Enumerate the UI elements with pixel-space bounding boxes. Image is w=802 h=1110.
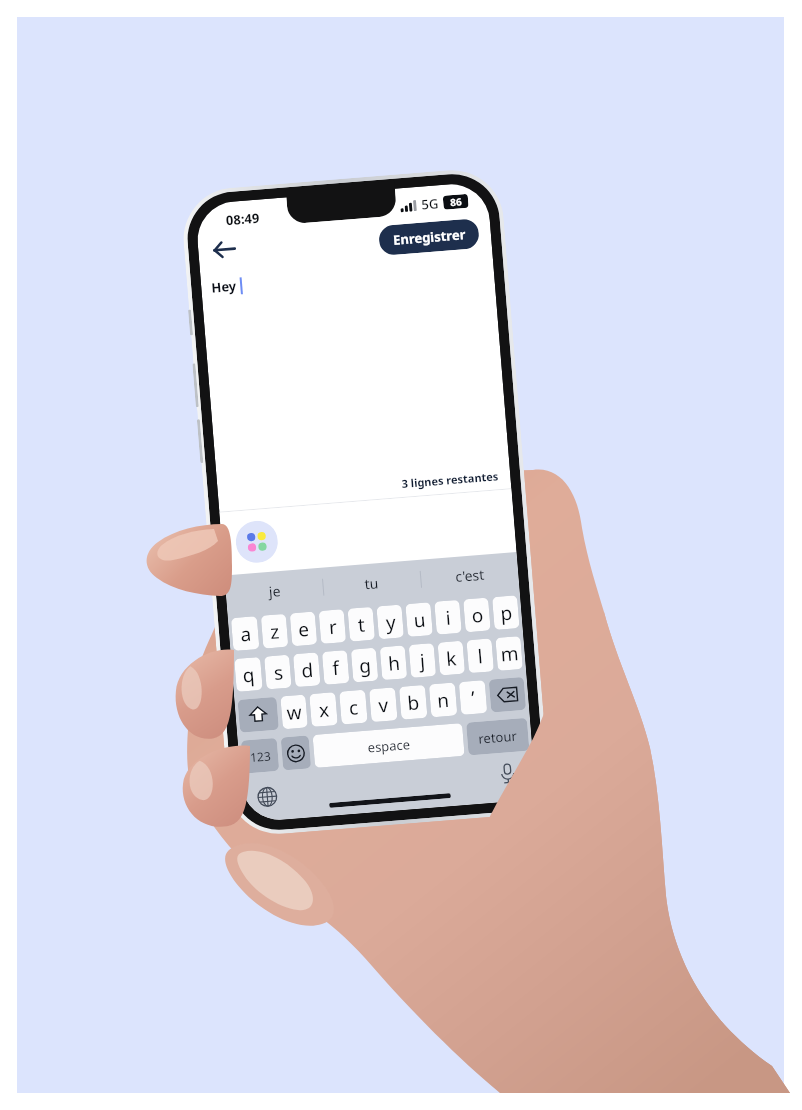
button[interactable]: Enregistrer xyxy=(378,218,480,256)
staticText: c'est xyxy=(454,565,485,586)
staticText: i xyxy=(444,605,452,631)
staticText: je xyxy=(268,581,282,601)
staticText: p xyxy=(499,600,513,626)
staticText: s xyxy=(272,659,284,686)
staticText: v xyxy=(377,692,389,719)
button[interactable]: s xyxy=(264,655,292,689)
button[interactable]: h xyxy=(380,645,407,680)
button[interactable]: Assistant xyxy=(234,519,279,564)
button[interactable]: e xyxy=(290,611,317,646)
button[interactable]: ’ xyxy=(459,680,487,715)
staticText: m xyxy=(500,640,520,668)
staticText: u xyxy=(413,607,427,633)
button[interactable]: retour xyxy=(466,718,529,756)
staticText: Enregistrer xyxy=(392,225,467,249)
button[interactable]: p xyxy=(492,595,520,630)
button[interactable]: l xyxy=(466,638,494,673)
staticText: e xyxy=(297,616,310,643)
button[interactable]: espace xyxy=(312,723,465,768)
button[interactable]: a xyxy=(231,616,259,651)
button[interactable]: b xyxy=(399,685,427,720)
button[interactable]: r xyxy=(319,609,346,644)
button[interactable]: i xyxy=(434,600,462,635)
button[interactable]: q xyxy=(234,657,263,692)
button[interactable]: n xyxy=(429,682,457,717)
button[interactable]: u xyxy=(405,602,433,637)
staticText: ’ xyxy=(470,685,476,711)
staticText: tu xyxy=(364,573,379,593)
staticText: l xyxy=(477,643,484,669)
staticText: retour xyxy=(478,727,518,748)
button[interactable]: Back xyxy=(202,233,246,266)
button[interactable]: v xyxy=(369,687,398,722)
staticText: 5G xyxy=(421,194,439,213)
button[interactable]: Shift xyxy=(237,697,279,733)
staticText: f xyxy=(331,655,340,681)
staticText: j xyxy=(419,648,426,674)
button[interactable]: tu xyxy=(321,560,422,607)
staticText: 08:49 xyxy=(225,209,260,229)
staticText: d xyxy=(300,657,314,684)
staticText: c xyxy=(347,694,359,721)
button[interactable]: j xyxy=(409,643,436,678)
button[interactable]: y xyxy=(376,604,404,639)
button[interactable]: Dictate xyxy=(491,757,523,790)
button[interactable]: k xyxy=(437,641,465,676)
button[interactable]: 123 xyxy=(241,738,279,774)
button[interactable]: z xyxy=(261,614,288,649)
button[interactable]: x xyxy=(309,692,338,727)
staticText: o xyxy=(470,602,484,629)
staticText: w xyxy=(286,699,303,726)
button[interactable]: Emoji xyxy=(281,735,311,770)
button[interactable]: Change keyboard xyxy=(251,781,283,813)
button[interactable]: g xyxy=(351,648,378,683)
button[interactable]: je xyxy=(224,568,324,614)
staticText: r xyxy=(328,614,338,640)
staticText: k xyxy=(445,645,458,672)
button[interactable]: f xyxy=(322,650,349,685)
staticText: a xyxy=(239,621,252,647)
button[interactable]: d xyxy=(293,652,321,687)
staticText: 86 xyxy=(450,194,463,209)
button[interactable]: o xyxy=(463,597,491,632)
staticText: b xyxy=(406,689,420,716)
staticText: t xyxy=(357,611,366,638)
button[interactable]: c'est xyxy=(419,552,520,599)
staticText: espace xyxy=(367,735,411,757)
staticText: 3 lignes restantes xyxy=(401,468,499,491)
staticText: y xyxy=(385,609,397,636)
button[interactable]: c xyxy=(339,690,368,725)
staticText: n xyxy=(436,687,450,714)
button[interactable]: Backspace xyxy=(489,677,526,713)
staticText: q xyxy=(241,661,255,688)
button[interactable]: m xyxy=(495,636,523,671)
staticText: x xyxy=(317,697,330,723)
button[interactable]: w xyxy=(280,694,308,729)
staticText: Hey xyxy=(211,277,237,297)
staticText: 123 xyxy=(249,747,272,765)
button[interactable]: t xyxy=(347,607,375,642)
staticText: z xyxy=(269,618,280,645)
staticText: g xyxy=(358,652,372,679)
staticText: h xyxy=(387,650,401,677)
